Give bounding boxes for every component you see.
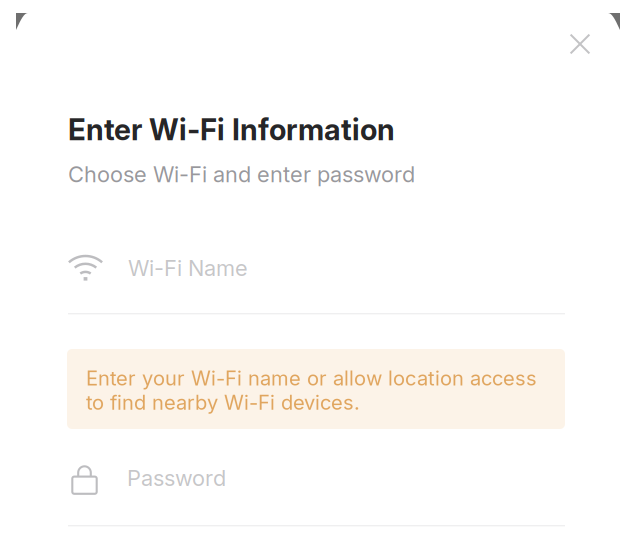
button[interactable]: Wi-Fi Name [68, 245, 565, 291]
button[interactable]: Password [71, 455, 565, 501]
staticText: Choose Wi-Fi and enter password [68, 161, 415, 187]
button[interactable]: Close [557, 21, 603, 67]
staticText: Wi-Fi Name [128, 255, 248, 281]
staticText: Enter your Wi-Fi name or allow location … [86, 366, 537, 415]
staticText: Password [127, 465, 226, 491]
staticText: Enter Wi-Fi Information [68, 112, 395, 147]
